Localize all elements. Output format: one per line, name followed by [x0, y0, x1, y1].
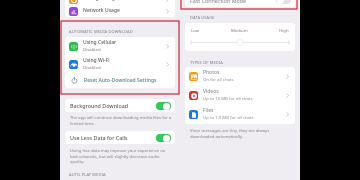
- staticText: Photos: [203, 69, 220, 76]
- button[interactable]: Toggle on: [156, 134, 171, 142]
- staticText: High: [279, 27, 289, 33]
- button[interactable]: Photos: [185, 67, 295, 86]
- staticText: Using less data may improve your experie…: [70, 148, 166, 164]
- staticText: Files: [203, 107, 214, 114]
- button[interactable]: Using Wi-Fi: [65, 55, 175, 73]
- staticText: Low: [191, 27, 200, 33]
- staticText: Voice messages are tiny, they are always…: [190, 128, 270, 139]
- button[interactable]: Use Less Data for Calls: [65, 131, 175, 144]
- staticText: Up to 1.0 MB for all chats: [203, 114, 254, 120]
- staticText: TYPES OF MEDIA: [190, 60, 223, 65]
- staticText: Videos: [203, 88, 219, 95]
- button[interactable]: Low: [185, 23, 295, 51]
- staticText: Use Less Data for Calls: [70, 134, 128, 141]
- staticText: Using Wi-Fi: [83, 57, 110, 64]
- staticText: DATA USAGE: [190, 15, 215, 20]
- staticText: Background Download: [70, 102, 129, 109]
- staticText: AUTOMATIC MEDIA DOWNLOAD: [69, 29, 133, 34]
- button[interactable]: Files: [185, 105, 295, 124]
- button[interactable]: Using Cellular: [65, 37, 175, 55]
- staticText: On for all chats: [203, 76, 234, 82]
- staticText: Network Usage: [83, 7, 120, 14]
- button[interactable]: Videos: [185, 86, 295, 105]
- button[interactable]: Storage Usage: [65, 0, 175, 5]
- button[interactable]: Network Usage: [65, 5, 175, 17]
- staticText: Using Cellular: [83, 39, 117, 46]
- staticText: AUTO-PLAY MEDIA: [69, 172, 106, 177]
- button[interactable]: Fast Connection Mode: [185, 0, 295, 7]
- staticText: Disabled: [83, 64, 101, 70]
- staticText: Up to 10 MB for all chats: [203, 95, 253, 101]
- staticText: Storage Usage: [83, 0, 118, 2]
- staticText: The app will continue downloading media …: [70, 115, 172, 126]
- button[interactable]: Toggle off: [276, 0, 291, 4]
- button[interactable]: Reset Auto-Download Settings: [65, 73, 175, 88]
- button[interactable]: Toggle on: [156, 102, 171, 110]
- staticText: Medium: [231, 27, 248, 33]
- staticText: Fast Connection Mode: [190, 0, 247, 4]
- staticText: Reset Auto-Download Settings: [84, 77, 157, 84]
- button[interactable]: Background Download: [65, 99, 175, 112]
- staticText: Disabled: [83, 46, 101, 52]
